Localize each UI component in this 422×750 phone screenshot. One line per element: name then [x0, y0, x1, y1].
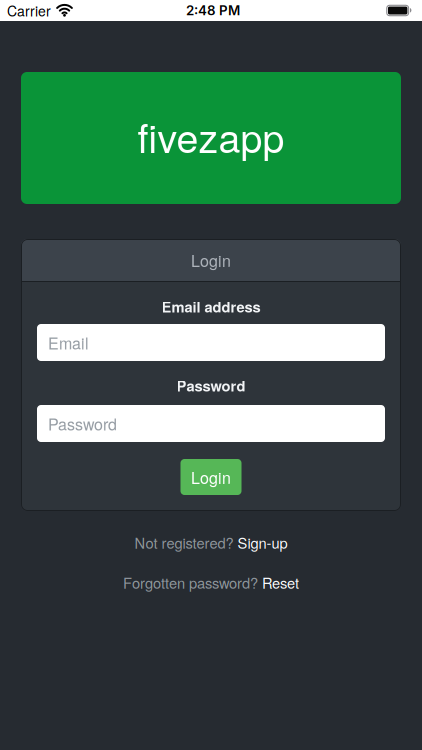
- button[interactable]: Reset: [262, 572, 299, 593]
- staticText: Email: [48, 331, 89, 354]
- staticText: Forgotten password?: [123, 572, 258, 593]
- staticText: Sign-up: [237, 532, 287, 553]
- staticText: Not registered?: [134, 532, 233, 553]
- staticText: Reset: [262, 572, 299, 593]
- staticText: fivezapp: [137, 108, 284, 164]
- button[interactable]: Sign-up: [237, 532, 287, 553]
- button[interactable]: Password: [37, 405, 385, 442]
- staticText: Carrier: [7, 0, 51, 20]
- staticText: Login: [191, 248, 231, 271]
- staticText: Password: [176, 375, 245, 396]
- staticText: Login: [191, 465, 231, 488]
- button[interactable]: Email address: [37, 324, 385, 361]
- staticText: Email address: [161, 296, 260, 317]
- staticText: Password: [48, 412, 117, 435]
- button[interactable]: Login: [180, 459, 241, 495]
- staticText: 2:48 PM: [186, 2, 240, 18]
